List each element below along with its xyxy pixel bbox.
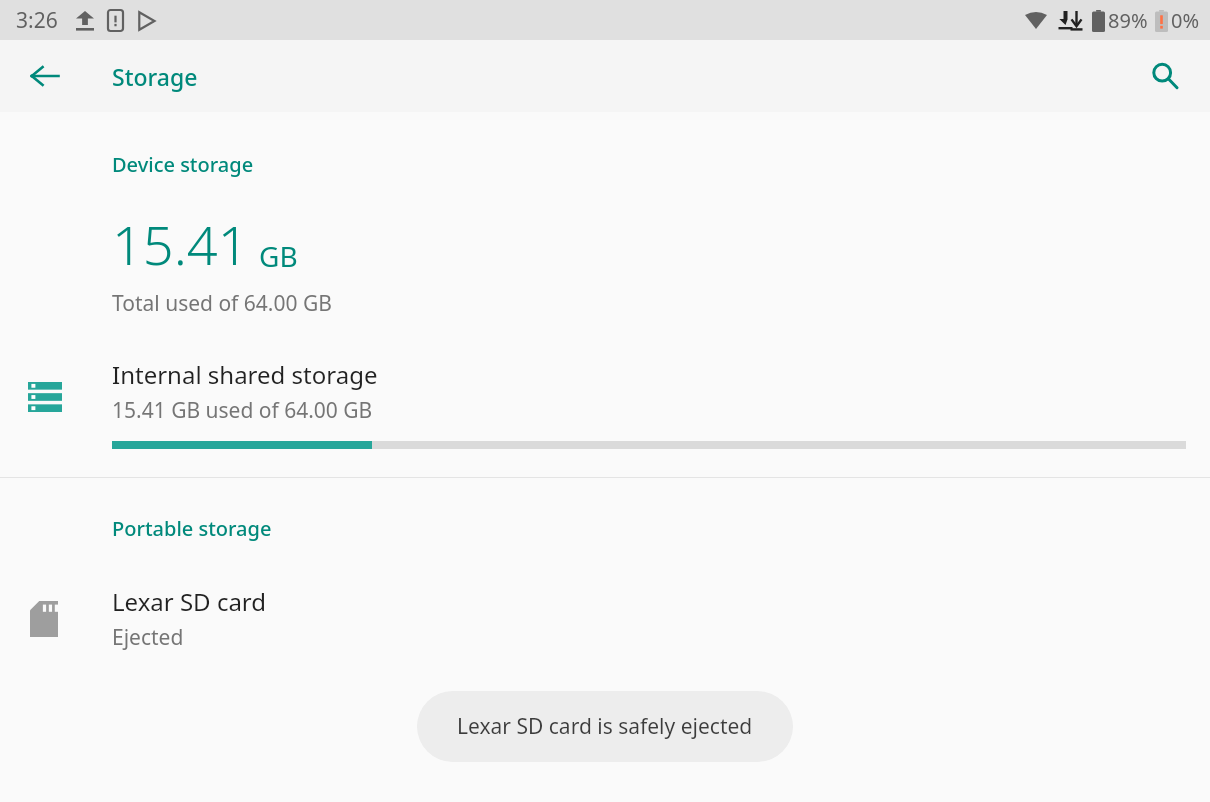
staticText: 89% xyxy=(1108,7,1148,34)
staticText: Portable storage xyxy=(112,515,272,542)
staticText: 3:26 xyxy=(16,6,58,35)
staticText: 0% xyxy=(1171,7,1200,34)
staticText: Ejected xyxy=(112,623,184,652)
staticText: Device storage xyxy=(112,151,254,178)
staticText: Storage xyxy=(112,61,198,92)
staticText: 15.41 xyxy=(112,207,249,281)
staticText: GB xyxy=(259,237,298,275)
staticText: Internal shared storage xyxy=(112,358,378,391)
button[interactable]: Lexar SD card xyxy=(0,585,1210,652)
button[interactable]: Lexar SD card is safely ejected xyxy=(417,691,793,762)
staticText: Lexar SD card xyxy=(112,585,267,618)
staticText: 15.41 GB used of 64.00 GB xyxy=(112,396,373,425)
button[interactable]: Search xyxy=(1134,45,1196,107)
button[interactable]: Internal shared storage xyxy=(0,358,1210,449)
staticText: Total used of 64.00 GB xyxy=(112,289,332,318)
button[interactable]: Back xyxy=(14,45,76,107)
staticText: Lexar SD card is safely ejected xyxy=(457,712,753,741)
